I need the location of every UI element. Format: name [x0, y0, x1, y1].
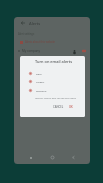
button[interactable]: Notifications [81, 48, 87, 54]
staticText: Weekly [36, 80, 45, 83]
staticText: My company [22, 49, 41, 53]
button[interactable]: CANCEL [52, 104, 65, 110]
button[interactable]: Home [48, 153, 57, 162]
button[interactable]: Back [19, 19, 26, 26]
button[interactable]: Back [69, 153, 78, 162]
button[interactable]: Alerts about this website [14, 38, 90, 46]
staticText: CANCEL [53, 105, 64, 109]
button[interactable]: Recents [26, 153, 35, 162]
button[interactable]: Back [14, 17, 90, 30]
button[interactable]: Weekly [20, 77, 85, 85]
staticText: Alert settings [18, 32, 35, 36]
staticText: Alerts about this website [25, 40, 56, 44]
button[interactable]: Daily [20, 69, 85, 77]
button[interactable]: Profile [71, 48, 77, 54]
staticText: Help for control who can see your alerts [35, 97, 76, 100]
staticText: Realtime [36, 89, 47, 92]
button[interactable]: My company [14, 47, 90, 55]
button[interactable]: OK [68, 104, 74, 110]
button[interactable]: Realtime [20, 86, 85, 94]
staticText: Daily [36, 72, 42, 75]
staticText: Alerts [29, 21, 41, 27]
staticText: Turn on email alerts [35, 59, 73, 64]
staticText: OK [69, 105, 73, 109]
